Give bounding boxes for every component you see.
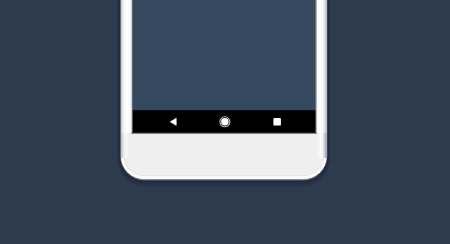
button[interactable]: Home	[201, 110, 249, 133]
button[interactable]: Back	[150, 110, 198, 133]
button[interactable]: Recent apps	[253, 110, 301, 133]
